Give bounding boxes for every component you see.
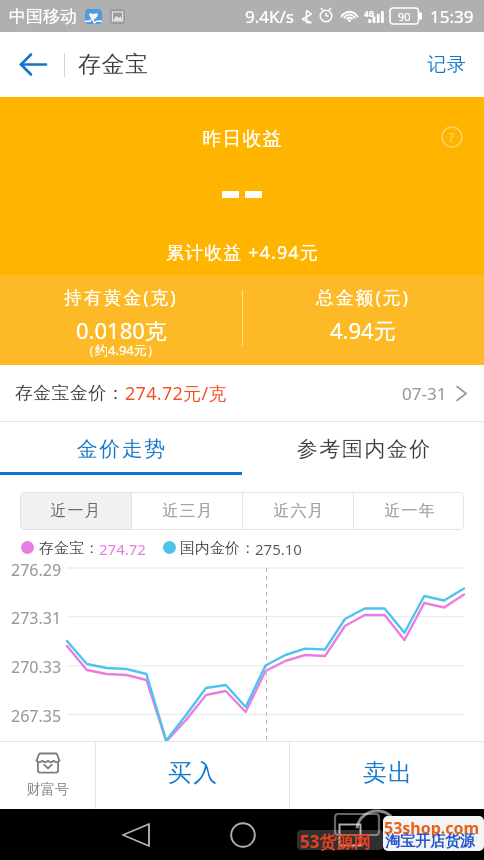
staticText: 近三月 <box>162 501 213 521</box>
staticText: 昨日收益 <box>202 127 282 151</box>
staticText: 4G <box>364 8 375 19</box>
staticText: 中国移动 <box>9 6 77 27</box>
staticText: 总金额(元) <box>316 285 410 310</box>
staticText: 273.31 <box>11 607 62 629</box>
staticText: 53shop.com <box>384 817 480 839</box>
staticText: 近一月 <box>50 501 101 521</box>
staticText: 累计收益 +4.94元 <box>166 240 319 265</box>
button[interactable]: 近六月 <box>243 492 353 530</box>
staticText: 记录 <box>427 53 466 77</box>
staticText: 274.72 <box>99 539 146 555</box>
staticText: 存金宝 <box>78 50 149 79</box>
button[interactable]: 卖出 <box>290 741 484 809</box>
staticText: 0.0180克 <box>76 315 167 345</box>
staticText: 270.33 <box>11 656 62 678</box>
button[interactable]: 记录 <box>409 37 484 93</box>
staticText: 买入 <box>167 758 218 788</box>
staticText: 276.29 <box>11 559 62 581</box>
staticText: 90 <box>398 9 411 24</box>
button[interactable]: Back <box>0 32 64 97</box>
staticText: 参考国内金价 <box>296 436 431 462</box>
staticText: 存金宝： <box>39 539 99 555</box>
button[interactable]: Home <box>221 813 265 857</box>
button[interactable]: 财富号 <box>0 741 95 809</box>
button[interactable]: 近一年 <box>354 492 464 530</box>
button[interactable]: 买入 <box>96 741 289 809</box>
staticText: 9.4K/s <box>245 5 294 28</box>
button[interactable]: Recents <box>328 813 372 857</box>
staticText: 近一年 <box>384 501 435 521</box>
staticText: （约4.94元） <box>82 341 160 359</box>
staticText: 4.94元 <box>330 315 396 345</box>
staticText: 275.10 <box>255 539 302 555</box>
staticText: 53货源网 <box>300 830 371 853</box>
button[interactable]: 参考国内金价 <box>242 422 484 475</box>
button[interactable]: Back <box>114 813 158 857</box>
staticText: 持有黄金(克) <box>64 285 178 310</box>
staticText: 金价走势 <box>76 436 166 462</box>
staticText: ? <box>449 129 455 145</box>
staticText: 15:39 <box>430 5 474 28</box>
staticText: 267.35 <box>11 705 62 727</box>
staticText: 淘宝开店货源 <box>385 832 475 851</box>
staticText: 卖出 <box>362 758 413 788</box>
staticText: 274.72元/克 <box>125 381 227 406</box>
staticText: 存金宝金价： <box>15 382 125 405</box>
staticText: 近六月 <box>273 501 324 521</box>
button[interactable]: 近三月 <box>132 492 242 530</box>
button[interactable]: 存金宝金价： <box>0 365 484 422</box>
staticText: 国内金价： <box>180 539 255 555</box>
staticText: 07-31 <box>402 382 447 405</box>
button[interactable]: Help <box>441 126 463 148</box>
staticText: 财富号 <box>27 781 69 799</box>
button[interactable]: 近一月 <box>20 492 131 530</box>
button[interactable]: 金价走势 <box>0 422 242 475</box>
